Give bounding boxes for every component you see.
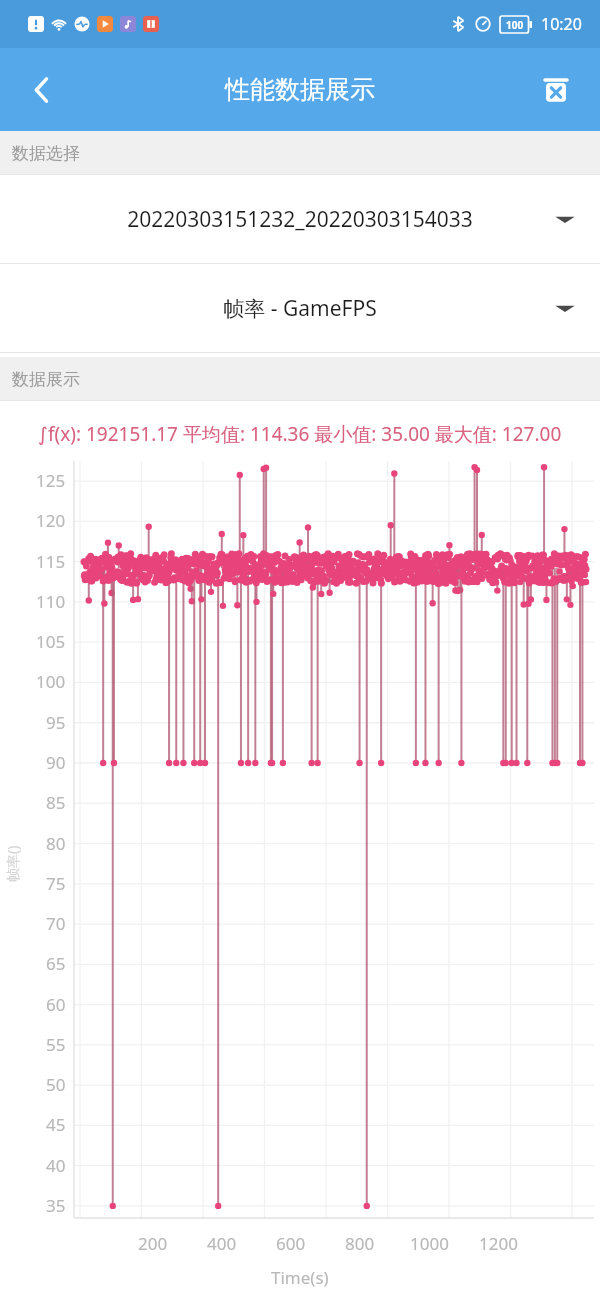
staticText: 性能数据展示 (225, 74, 375, 105)
button[interactable]: Back (12, 60, 72, 120)
staticText: 55 (46, 1033, 66, 1056)
staticText: 85 (46, 791, 66, 814)
staticText: Time(s) (271, 1266, 329, 1289)
staticText: 40 (46, 1154, 66, 1177)
staticText: 400 (207, 1232, 237, 1255)
staticText: 600 (276, 1232, 306, 1255)
staticText: 95 (46, 711, 66, 734)
staticText: 120 (36, 509, 66, 532)
staticText: 115 (36, 550, 66, 573)
staticText: 110 (36, 590, 66, 613)
staticText: 1000 (410, 1232, 449, 1255)
staticText: 800 (345, 1232, 375, 1255)
staticText: 45 (46, 1113, 66, 1136)
staticText: 20220303151232_20220303154033 (60, 205, 540, 234)
staticText: 70 (46, 912, 66, 935)
staticText: 65 (46, 952, 66, 975)
staticText: 75 (46, 872, 66, 895)
staticText: 35 (46, 1194, 66, 1217)
staticText: 60 (46, 993, 66, 1016)
staticText: 数据选择 (12, 143, 80, 164)
staticText: 帧率 - GameFPS (60, 294, 540, 323)
staticText: 90 (46, 751, 66, 774)
staticText: 10:20 (541, 13, 582, 35)
staticText: 105 (36, 630, 66, 653)
staticText: ∫f(x): 192151.17 平均值: 114.36 最小值: 35.00 … (38, 421, 578, 447)
staticText: 50 (46, 1073, 66, 1096)
staticText: 80 (46, 832, 66, 855)
button[interactable]: 帧率 - GameFPS (0, 264, 600, 352)
staticText: 数据展示 (12, 369, 80, 390)
staticText: 200 (138, 1232, 168, 1255)
button[interactable]: 20220303151232_20220303154033 (0, 175, 600, 263)
staticText: 帧率() (3, 845, 22, 882)
staticText: 1200 (479, 1232, 518, 1255)
button[interactable]: Delete (526, 60, 586, 120)
staticText: 100 (36, 670, 66, 693)
staticText: 100 (506, 18, 524, 32)
staticText: 125 (36, 469, 66, 492)
